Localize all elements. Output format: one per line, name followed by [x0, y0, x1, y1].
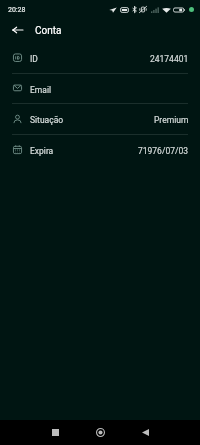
staticText: Situação	[30, 115, 64, 125]
staticText: 71976/07/03	[138, 146, 189, 156]
staticText: Conta	[35, 25, 62, 37]
staticText: ID	[30, 54, 38, 64]
button[interactable]: ID	[0, 43, 200, 73]
button[interactable]: Email	[0, 74, 200, 103]
button[interactable]: Back	[4, 17, 30, 43]
button[interactable]: Recent apps	[38, 420, 72, 445]
staticText: 20:28	[8, 6, 26, 14]
staticText: Premium	[154, 115, 189, 125]
button[interactable]: Situação	[0, 104, 200, 134]
button[interactable]: Home	[83, 420, 117, 445]
staticText: Email	[30, 85, 52, 95]
button[interactable]: Back	[128, 420, 162, 445]
staticText: 24174401	[150, 54, 189, 64]
staticText: Expira	[30, 146, 54, 156]
button[interactable]: Expira	[0, 135, 200, 165]
